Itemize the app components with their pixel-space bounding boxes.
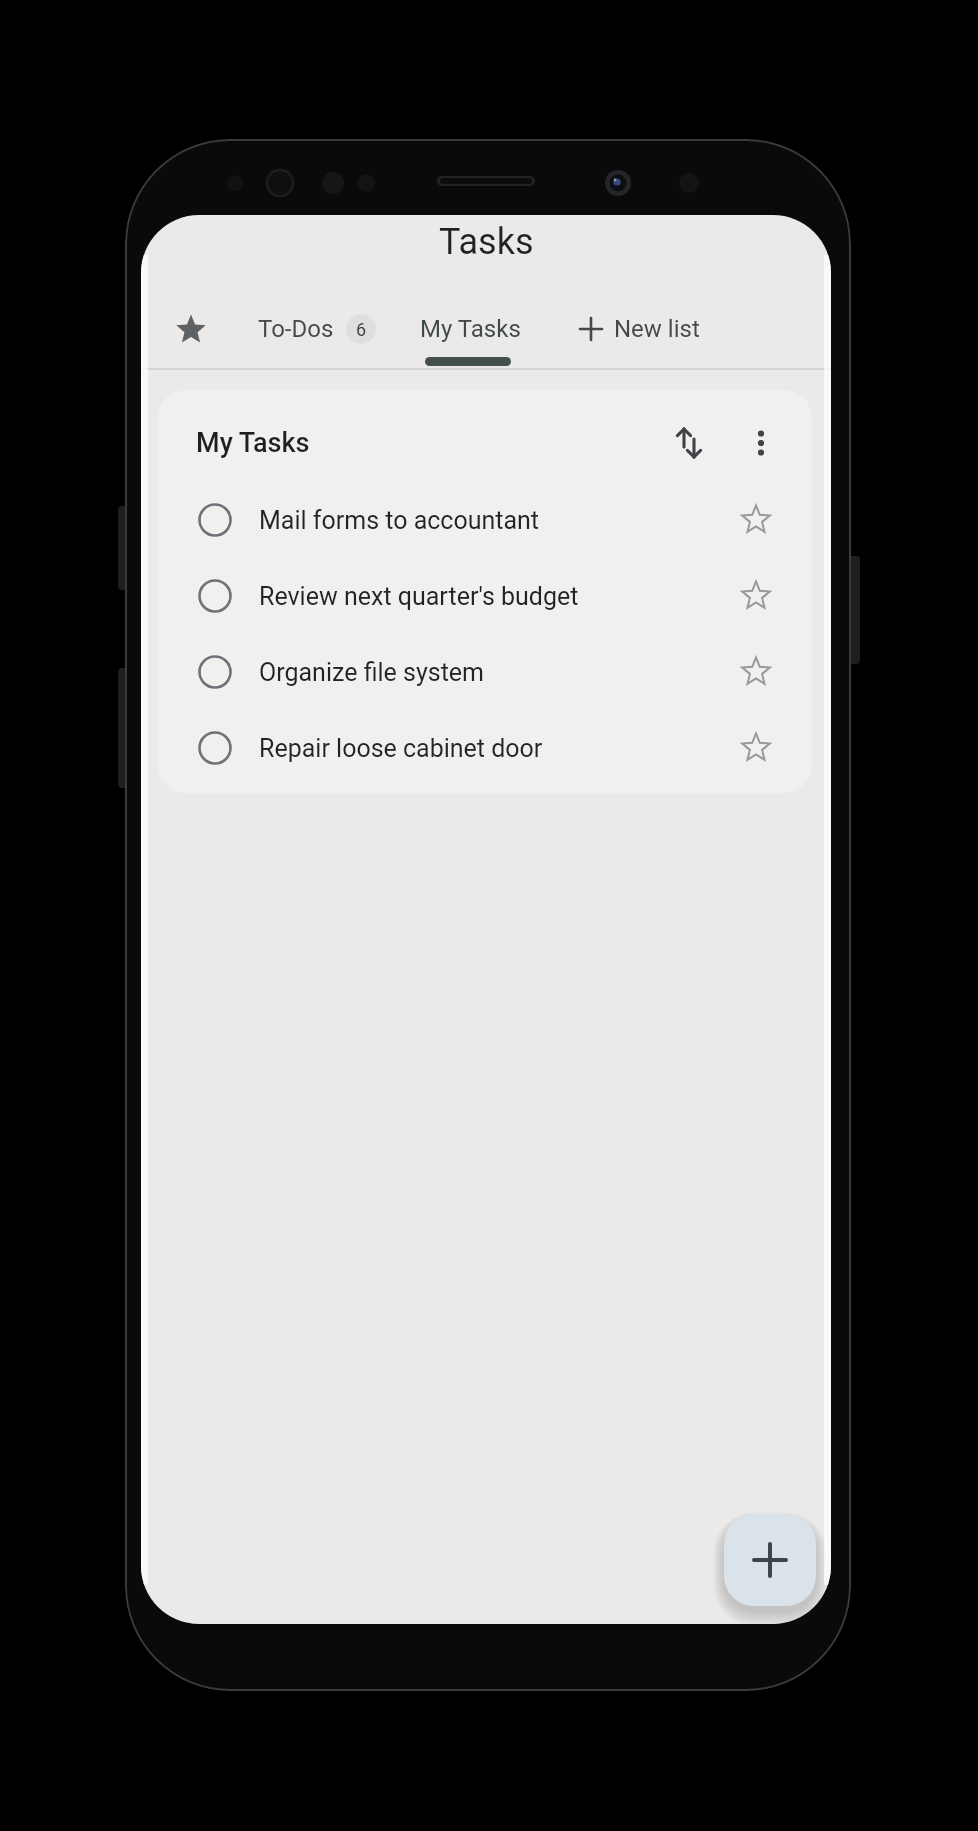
staticText: To-Dos <box>258 315 334 343</box>
button[interactable]: To-Dos <box>237 293 385 365</box>
staticText: Review next quarter's budget <box>259 582 579 611</box>
button[interactable] <box>728 568 784 624</box>
button[interactable]: Organize file system <box>178 634 792 710</box>
button[interactable] <box>155 293 227 365</box>
staticText: New list <box>614 315 700 343</box>
button[interactable]: My Tasks <box>405 293 535 365</box>
button[interactable] <box>728 492 784 548</box>
staticText: Organize file system <box>259 658 485 687</box>
button[interactable]: Mail forms to accountant <box>178 482 792 558</box>
button[interactable] <box>724 1514 816 1606</box>
button[interactable] <box>728 644 784 700</box>
staticText: Mail forms to accountant <box>259 506 540 535</box>
button[interactable]: Repair loose cabinet door <box>178 710 792 786</box>
staticText: Repair loose cabinet door <box>259 734 543 763</box>
button[interactable] <box>733 415 789 471</box>
staticText: My Tasks <box>420 315 521 343</box>
button[interactable]: New list <box>555 293 723 365</box>
staticText: 6 <box>356 319 367 340</box>
button[interactable] <box>660 415 716 471</box>
button[interactable] <box>728 720 784 776</box>
button[interactable]: Review next quarter's budget <box>178 558 792 634</box>
staticText: My Tasks <box>196 427 310 459</box>
staticText: Tasks <box>439 221 534 263</box>
